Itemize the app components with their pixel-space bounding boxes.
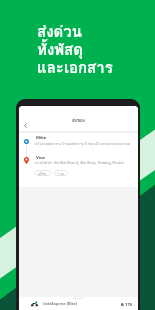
button[interactable]: 1 กม. (54, 170, 68, 176)
staticText: Viva (36, 155, 45, 161)
staticText: ทาวน์เฮ้าส์ • Soi Mai Khao 8, Mai Khao, … (35, 160, 125, 166)
button[interactable] (19, 134, 138, 156)
staticText: GrabExpress [Bike] (43, 301, 78, 306)
staticText: ส่งด่วน ทั้งพัสดุ และเอกสาร (37, 20, 113, 80)
staticText: แก้ไข (38, 171, 47, 176)
staticText: 1 กม. (57, 171, 65, 176)
staticText: Mike (36, 135, 47, 141)
button[interactable]: Back (20, 120, 30, 130)
button[interactable]: แก้ไข (34, 170, 51, 176)
staticText: ส่งของ (19, 117, 138, 124)
staticText: ฿ 115 (121, 302, 133, 308)
button[interactable] (19, 154, 138, 184)
staticText: ครัวอร่อยพระราม 9 ซอยพระราม 9 ซอย 41 แขว… (35, 141, 135, 147)
